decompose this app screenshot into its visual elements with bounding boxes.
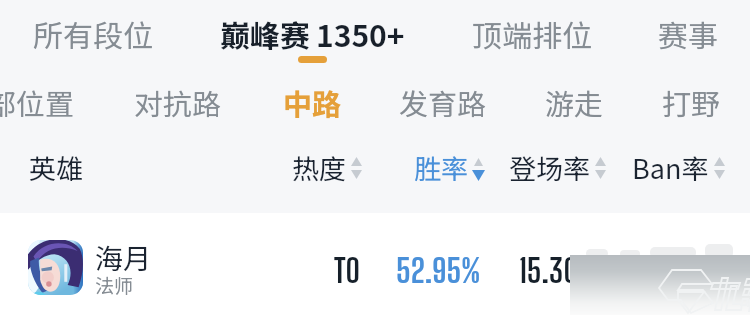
button[interactable]: Ban率 [632, 148, 725, 187]
staticText: 游走 [545, 81, 604, 123]
button[interactable]: 游走 [545, 81, 604, 123]
staticText: 52.95% [396, 251, 481, 291]
staticText: 赛事 [658, 12, 718, 55]
button[interactable]: 打野 [662, 81, 721, 123]
button[interactable]: 发育路 [399, 81, 487, 123]
staticText: 登场率 [509, 148, 590, 187]
button[interactable]: 胜率 [414, 148, 484, 187]
button[interactable]: 顶端排位 [472, 12, 592, 55]
button[interactable]: 赛事 [658, 12, 718, 55]
button[interactable]: 对抗路 [134, 81, 222, 123]
button[interactable]: 全部位置 [0, 81, 75, 123]
button[interactable]: 所有段位 [33, 12, 153, 55]
staticText: 热度 [292, 148, 346, 187]
button[interactable]: 巅峰赛 1350+ [220, 12, 405, 55]
staticText: 发育路 [399, 81, 487, 123]
staticText: 法师 [95, 271, 134, 299]
staticText: 所有段位 [33, 12, 153, 55]
staticText: 胜率 [414, 148, 468, 187]
button[interactable]: 海月 hero avatar [28, 240, 83, 295]
staticText: T0 [334, 251, 361, 291]
staticText: 顶端排位 [472, 12, 592, 55]
button[interactable]: 英雄 [29, 148, 83, 187]
staticText: 中路 [283, 81, 342, 123]
button[interactable]: 海月 [95, 237, 152, 278]
button[interactable]: 热度 [292, 148, 362, 187]
button[interactable]: 登场率 [509, 148, 606, 187]
staticText: 15.30 [519, 251, 578, 291]
button[interactable]: 中路 [283, 81, 342, 123]
staticText: Ban率 [632, 148, 709, 187]
staticText: 海月 [95, 237, 152, 278]
staticText: 打野 [662, 81, 721, 123]
staticText: 对抗路 [134, 81, 222, 123]
staticText: 全部位置 [0, 81, 75, 123]
staticText: 英雄 [29, 148, 83, 187]
staticText: 巅峰赛 1350+ [220, 12, 405, 55]
